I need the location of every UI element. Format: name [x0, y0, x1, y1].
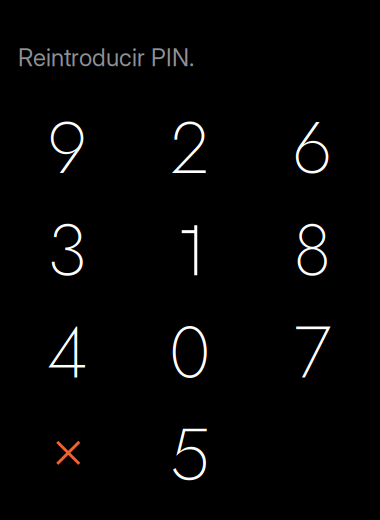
staticText: Reintroducir PIN.: [18, 43, 194, 72]
staticText: 0: [169, 300, 210, 404]
staticText: 7: [294, 300, 331, 404]
button[interactable]: Borrar: [6, 404, 128, 506]
staticText: 3: [47, 198, 87, 302]
button[interactable]: 3: [6, 199, 128, 301]
button[interactable]: 5: [128, 404, 251, 506]
staticText: 9: [47, 96, 87, 200]
button[interactable]: 4: [6, 301, 128, 404]
staticText: 6: [292, 96, 332, 200]
staticText: 8: [293, 198, 331, 302]
button[interactable]: 6: [251, 97, 373, 199]
button[interactable]: 2: [128, 97, 251, 199]
button[interactable]: 9: [6, 97, 128, 199]
button[interactable]: 0: [128, 301, 251, 404]
button[interactable]: 8: [251, 199, 373, 301]
staticText: 4: [47, 300, 88, 404]
staticText: 5: [170, 403, 210, 507]
button[interactable]: 7: [251, 301, 373, 404]
staticText: 2: [170, 96, 209, 200]
button[interactable]: [128, 199, 251, 301]
